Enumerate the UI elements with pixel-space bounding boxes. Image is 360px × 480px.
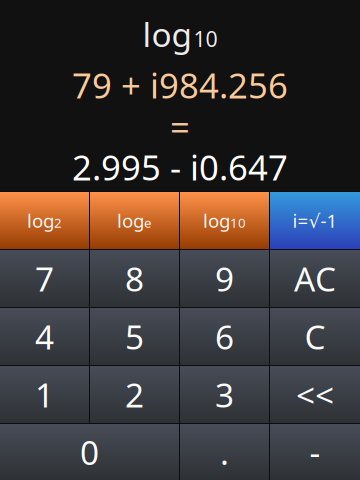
button[interactable]: 7 [0,250,89,307]
staticText: log [117,208,144,233]
button[interactable]: i=√-1 [270,192,360,249]
staticText: 9 [215,256,234,301]
button[interactable]: 1 [0,366,89,423]
staticText: log [203,208,230,233]
button[interactable]: << [270,366,360,423]
button[interactable]: 4 [0,308,89,365]
staticText: 8 [125,256,144,301]
staticText: log [142,12,192,56]
staticText: 2.995 - i0.647 [72,144,288,190]
button[interactable]: AC [270,250,360,307]
staticText: 10 [193,24,217,53]
button[interactable]: C [270,308,360,365]
button[interactable]: 6 [180,308,269,365]
button[interactable]: 8 [90,250,179,307]
button[interactable]: 0 [0,424,179,480]
staticText: log [27,208,54,233]
button[interactable]: log [90,192,179,249]
staticText: 2 [125,372,144,417]
staticText: 3 [215,372,234,417]
button[interactable]: 5 [90,308,179,365]
staticText: 4 [35,314,54,359]
button[interactable]: 3 [180,366,269,423]
button[interactable]: log [180,192,269,249]
button[interactable]: - [270,424,360,480]
staticText: i=√-1 [292,208,337,233]
staticText: 79 + i984.256 [72,62,288,108]
staticText: 7 [35,256,54,301]
staticText: 10 [230,214,246,231]
button[interactable]: 2 [90,366,179,423]
staticText: e [144,214,152,231]
staticText: 1 [35,372,54,417]
staticText: . [220,430,229,474]
button[interactable]: 9 [180,250,269,307]
staticText: 5 [125,314,144,359]
staticText: << [296,372,334,417]
staticText: 2 [54,214,62,231]
staticText: AC [294,256,336,301]
staticText: 0 [80,430,99,474]
staticText: - [309,430,320,474]
button[interactable]: log [0,192,89,249]
staticText: 6 [215,314,234,359]
button[interactable]: . [180,424,269,480]
staticText: = [170,104,190,150]
staticText: C [304,314,325,359]
